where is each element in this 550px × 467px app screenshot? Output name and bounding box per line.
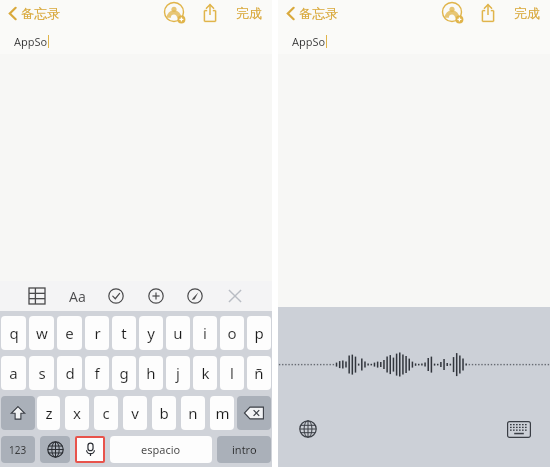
button[interactable]: 完成 [512, 3, 542, 23]
button[interactable]: Share [198, 1, 222, 25]
button[interactable]: Dictation [75, 436, 105, 463]
button[interactable]: Dismiss keyboard [222, 283, 248, 309]
button[interactable]: s [29, 356, 54, 390]
staticText: f [94, 363, 100, 383]
button[interactable]: c [94, 396, 118, 430]
button[interactable]: p [247, 316, 271, 350]
button[interactable]: Show keyboard [506, 419, 532, 439]
button[interactable]: 123 [1, 436, 35, 463]
staticText: 备忘录 [299, 5, 338, 21]
button[interactable]: Text format [64, 283, 90, 309]
staticText: b [159, 403, 169, 423]
button[interactable]: m [210, 396, 234, 430]
staticText: q [9, 323, 19, 343]
button[interactable]: Checklist [103, 283, 129, 309]
staticText: e [65, 323, 74, 343]
button[interactable]: Next keyboard [40, 436, 70, 463]
staticText: Aa [69, 287, 86, 306]
button[interactable]: 备忘录 [6, 3, 62, 23]
button[interactable]: 备忘录 [284, 3, 340, 23]
staticText: w [36, 323, 48, 343]
button[interactable]: Add attachment [143, 283, 169, 309]
button[interactable]: g [112, 356, 136, 390]
button[interactable]: t [112, 316, 136, 350]
staticText: h [146, 363, 156, 383]
button[interactable]: n [181, 396, 205, 430]
staticText: intro [232, 442, 257, 457]
button[interactable]: 完成 [234, 3, 264, 23]
button[interactable]: k [193, 356, 217, 390]
button[interactable]: y [139, 316, 163, 350]
staticText: espacio [141, 442, 181, 457]
button[interactable]: j [166, 356, 190, 390]
staticText: AppSo [292, 34, 326, 49]
staticText: i [203, 323, 207, 343]
button[interactable]: r [85, 316, 109, 350]
button[interactable]: f [85, 356, 109, 390]
button[interactable]: i [193, 316, 217, 350]
staticText: ñ [254, 363, 264, 383]
button[interactable]: ñ [247, 356, 271, 390]
staticText: g [119, 363, 129, 383]
staticText: p [254, 323, 264, 343]
staticText: o [227, 323, 237, 343]
staticText: v [131, 403, 139, 423]
button[interactable]: Shift [1, 396, 35, 430]
staticText: t [121, 323, 127, 343]
staticText: m [215, 403, 230, 423]
button[interactable]: w [29, 316, 54, 350]
staticText: j [176, 363, 180, 383]
staticText: r [94, 323, 101, 343]
button[interactable]: h [139, 356, 163, 390]
button[interactable]: Next keyboard [296, 417, 320, 441]
button[interactable]: Table [24, 283, 50, 309]
staticText: 完成 [236, 5, 262, 21]
button[interactable]: e [57, 316, 82, 350]
staticText: 备忘录 [21, 5, 60, 21]
staticText: 完成 [514, 5, 540, 21]
staticText: 123 [9, 443, 27, 457]
button[interactable]: Add people [440, 0, 466, 26]
button[interactable]: a [1, 356, 26, 390]
button[interactable]: z [37, 396, 60, 430]
staticText: x [73, 403, 81, 423]
staticText: k [201, 363, 210, 383]
button[interactable]: x [65, 396, 89, 430]
staticText: a [9, 363, 18, 383]
button[interactable]: Add people [162, 0, 188, 26]
button[interactable]: l [220, 356, 244, 390]
button[interactable]: Share [476, 1, 500, 25]
button[interactable]: intro [217, 436, 271, 463]
button[interactable]: Backspace [237, 396, 271, 430]
staticText: AppSo [14, 34, 48, 49]
button[interactable]: q [1, 316, 26, 350]
button[interactable]: d [57, 356, 82, 390]
staticText: s [38, 363, 46, 383]
button[interactable]: espacio [110, 436, 212, 463]
staticText: l [230, 363, 234, 383]
staticText: y [147, 323, 155, 343]
staticText: u [173, 323, 183, 343]
staticText: d [65, 363, 75, 383]
staticText: n [188, 403, 198, 423]
button[interactable]: v [123, 396, 147, 430]
button[interactable]: b [152, 396, 176, 430]
staticText: z [45, 403, 53, 423]
button[interactable]: o [220, 316, 244, 350]
button[interactable]: Markup [182, 283, 208, 309]
button[interactable]: u [166, 316, 190, 350]
staticText: c [102, 403, 110, 423]
